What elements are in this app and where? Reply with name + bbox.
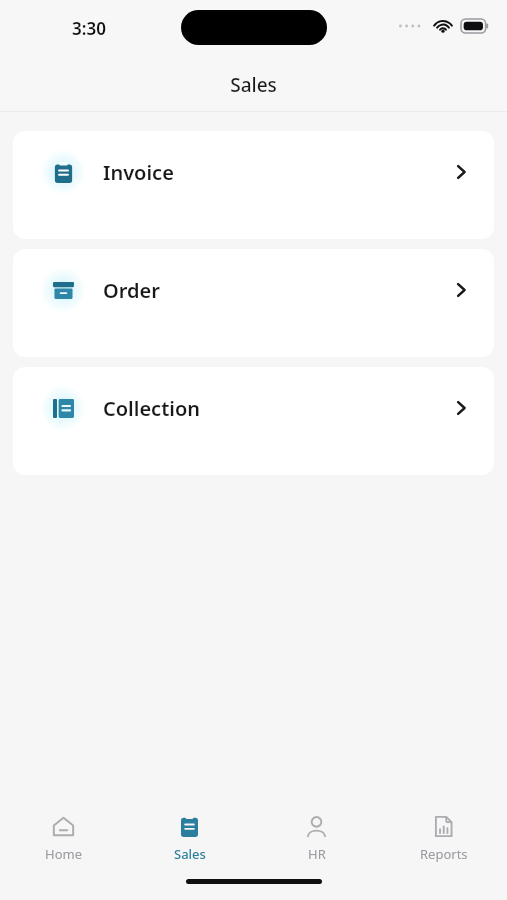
button[interactable]: Order	[13, 249, 494, 357]
button[interactable]: Sales	[126, 805, 253, 873]
staticText: 3:30	[72, 17, 106, 40]
button[interactable]: Invoice	[13, 131, 494, 239]
staticText: Sales	[174, 845, 206, 863]
staticText: Sales	[230, 72, 277, 98]
button[interactable]: Collection	[13, 367, 494, 475]
button[interactable]: Reports	[380, 805, 507, 873]
staticText: Home	[45, 845, 82, 863]
staticText: Collection	[103, 395, 201, 422]
staticText: Invoice	[103, 159, 174, 186]
staticText: Order	[103, 277, 160, 304]
button[interactable]: Home	[0, 805, 126, 873]
staticText: HR	[308, 845, 326, 863]
button[interactable]: HR	[253, 805, 380, 873]
staticText: Reports	[420, 845, 468, 863]
